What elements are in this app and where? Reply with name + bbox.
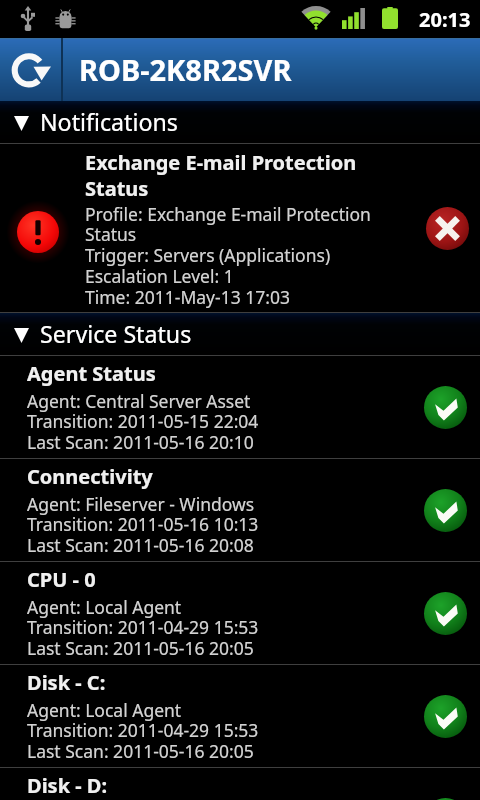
staticText: Service Status	[40, 318, 192, 350]
button[interactable]: Notifications	[0, 101, 480, 143]
staticText: Notifications	[40, 106, 178, 138]
staticText: Agent Status	[27, 360, 156, 387]
staticText: Disk - C:	[27, 669, 106, 696]
staticText: CPU - 0	[27, 566, 96, 593]
staticText: ROB-2K8R2SVR	[79, 50, 292, 89]
staticText: Agent: Local Agent Transition: 2011-04-2…	[27, 595, 259, 661]
staticText: Exchange E-mail Protection Status	[85, 149, 375, 202]
staticText: Agent: Fileserver - Windows Transition: …	[27, 492, 259, 558]
staticText: Profile: Exchange E-mail Protection Stat…	[85, 202, 375, 310]
button[interactable]: Exchange E-mail Protection Status	[0, 144, 480, 312]
staticText: Agent: Central Server Asset Transition: …	[27, 389, 259, 455]
button[interactable]: Disk - D:	[0, 768, 480, 800]
button[interactable]: CPU - 0	[0, 562, 480, 664]
button[interactable]: Service Status	[0, 313, 480, 355]
button[interactable]: Connectivity	[0, 459, 480, 561]
staticText: 20:13	[419, 6, 471, 33]
staticText: Agent: Local Agent Transition: 2011-04-2…	[27, 698, 259, 764]
button[interactable]: Disk - C:	[0, 665, 480, 767]
staticText: Connectivity	[27, 463, 153, 490]
button[interactable]: Refresh	[0, 38, 62, 101]
button[interactable]: Agent Status	[0, 356, 480, 458]
staticText: Disk - D:	[27, 772, 108, 799]
